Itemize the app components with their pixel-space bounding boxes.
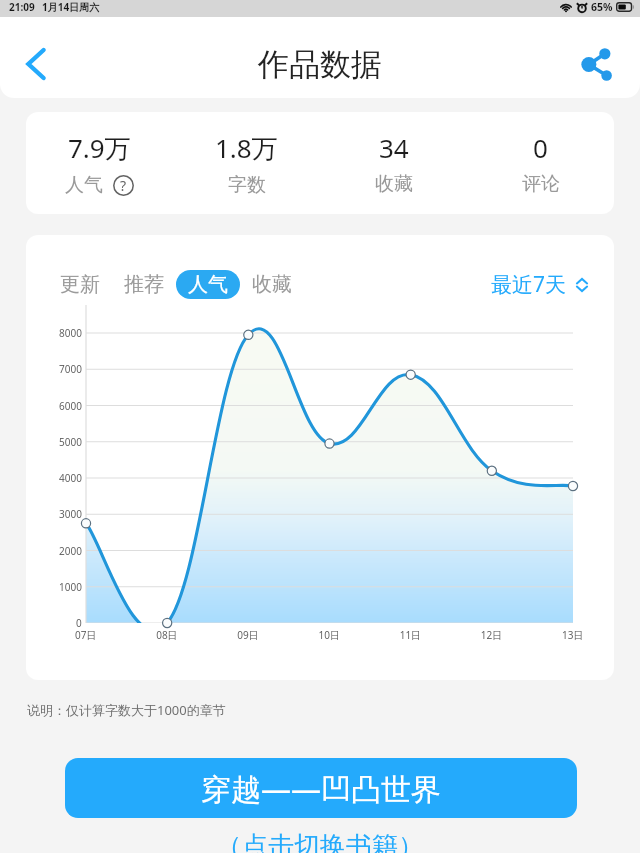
- staticText: 1月14日周六: [42, 0, 100, 14]
- staticText: 穿越——凹凸世界: [201, 768, 441, 809]
- button[interactable]: 0: [467, 130, 614, 196]
- button[interactable]: 收藏: [240, 270, 304, 299]
- button[interactable]: Share: [571, 38, 623, 90]
- staticText: 1.8万: [215, 130, 278, 166]
- button[interactable]: （点击切换书籍）: [216, 830, 424, 853]
- button[interactable]: 推荐: [112, 270, 176, 299]
- staticText: 0: [533, 130, 548, 165]
- staticText: 推荐: [124, 272, 164, 297]
- staticText: 65%: [591, 0, 613, 14]
- button[interactable]: 1.8万: [173, 130, 320, 197]
- staticText: 说明：仅计算字数大于1000的章节: [27, 701, 226, 719]
- staticText: 收藏: [375, 172, 413, 196]
- staticText: ?: [120, 176, 127, 195]
- staticText: 21:09: [9, 0, 35, 14]
- button[interactable]: 7.9万: [26, 130, 173, 197]
- button[interactable]: Back: [10, 38, 62, 90]
- staticText: 最近7天: [491, 270, 567, 299]
- staticText: 人气: [188, 272, 228, 297]
- staticText: 34: [379, 130, 409, 165]
- staticText: 评论: [522, 172, 560, 196]
- button[interactable]: 34: [320, 130, 467, 196]
- staticText: 字数: [228, 173, 266, 197]
- button[interactable]: 更新: [48, 270, 112, 299]
- staticText: 7.9万: [68, 130, 131, 166]
- button[interactable]: 人气: [176, 270, 240, 299]
- staticText: 收藏: [252, 272, 292, 297]
- staticText: 人气: [65, 173, 103, 197]
- staticText: 作品数据: [258, 45, 382, 84]
- button[interactable]: 最近7天: [491, 270, 590, 299]
- staticText: 更新: [60, 272, 100, 297]
- button[interactable]: 穿越——凹凸世界: [65, 758, 577, 818]
